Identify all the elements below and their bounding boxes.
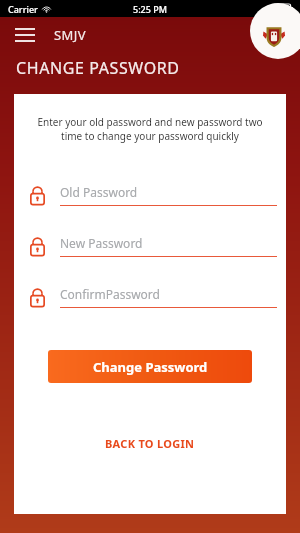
button[interactable]: App logo xyxy=(250,3,300,59)
button[interactable]: Open navigation menu xyxy=(8,18,42,52)
button[interactable]: Change Password xyxy=(48,350,252,383)
button[interactable]: BACK TO LOGIN xyxy=(95,432,205,455)
button[interactable]: New Password xyxy=(30,235,277,257)
staticText: Old Password xyxy=(60,184,138,200)
staticText: Carrier xyxy=(8,3,38,15)
staticText: Change Password xyxy=(93,358,208,376)
button[interactable]: ConfirmPassword xyxy=(30,286,277,308)
staticText: ConfirmPassword xyxy=(60,286,160,302)
button[interactable]: Old Password xyxy=(30,184,277,206)
staticText: SMJV xyxy=(54,26,86,44)
staticText: Enter your old password and new password… xyxy=(28,115,272,143)
staticText: CHANGE PASSWORD xyxy=(16,57,180,79)
staticText: BACK TO LOGIN xyxy=(105,436,195,451)
staticText: New Password xyxy=(60,235,143,251)
staticText: 5:25 PM xyxy=(133,3,167,15)
